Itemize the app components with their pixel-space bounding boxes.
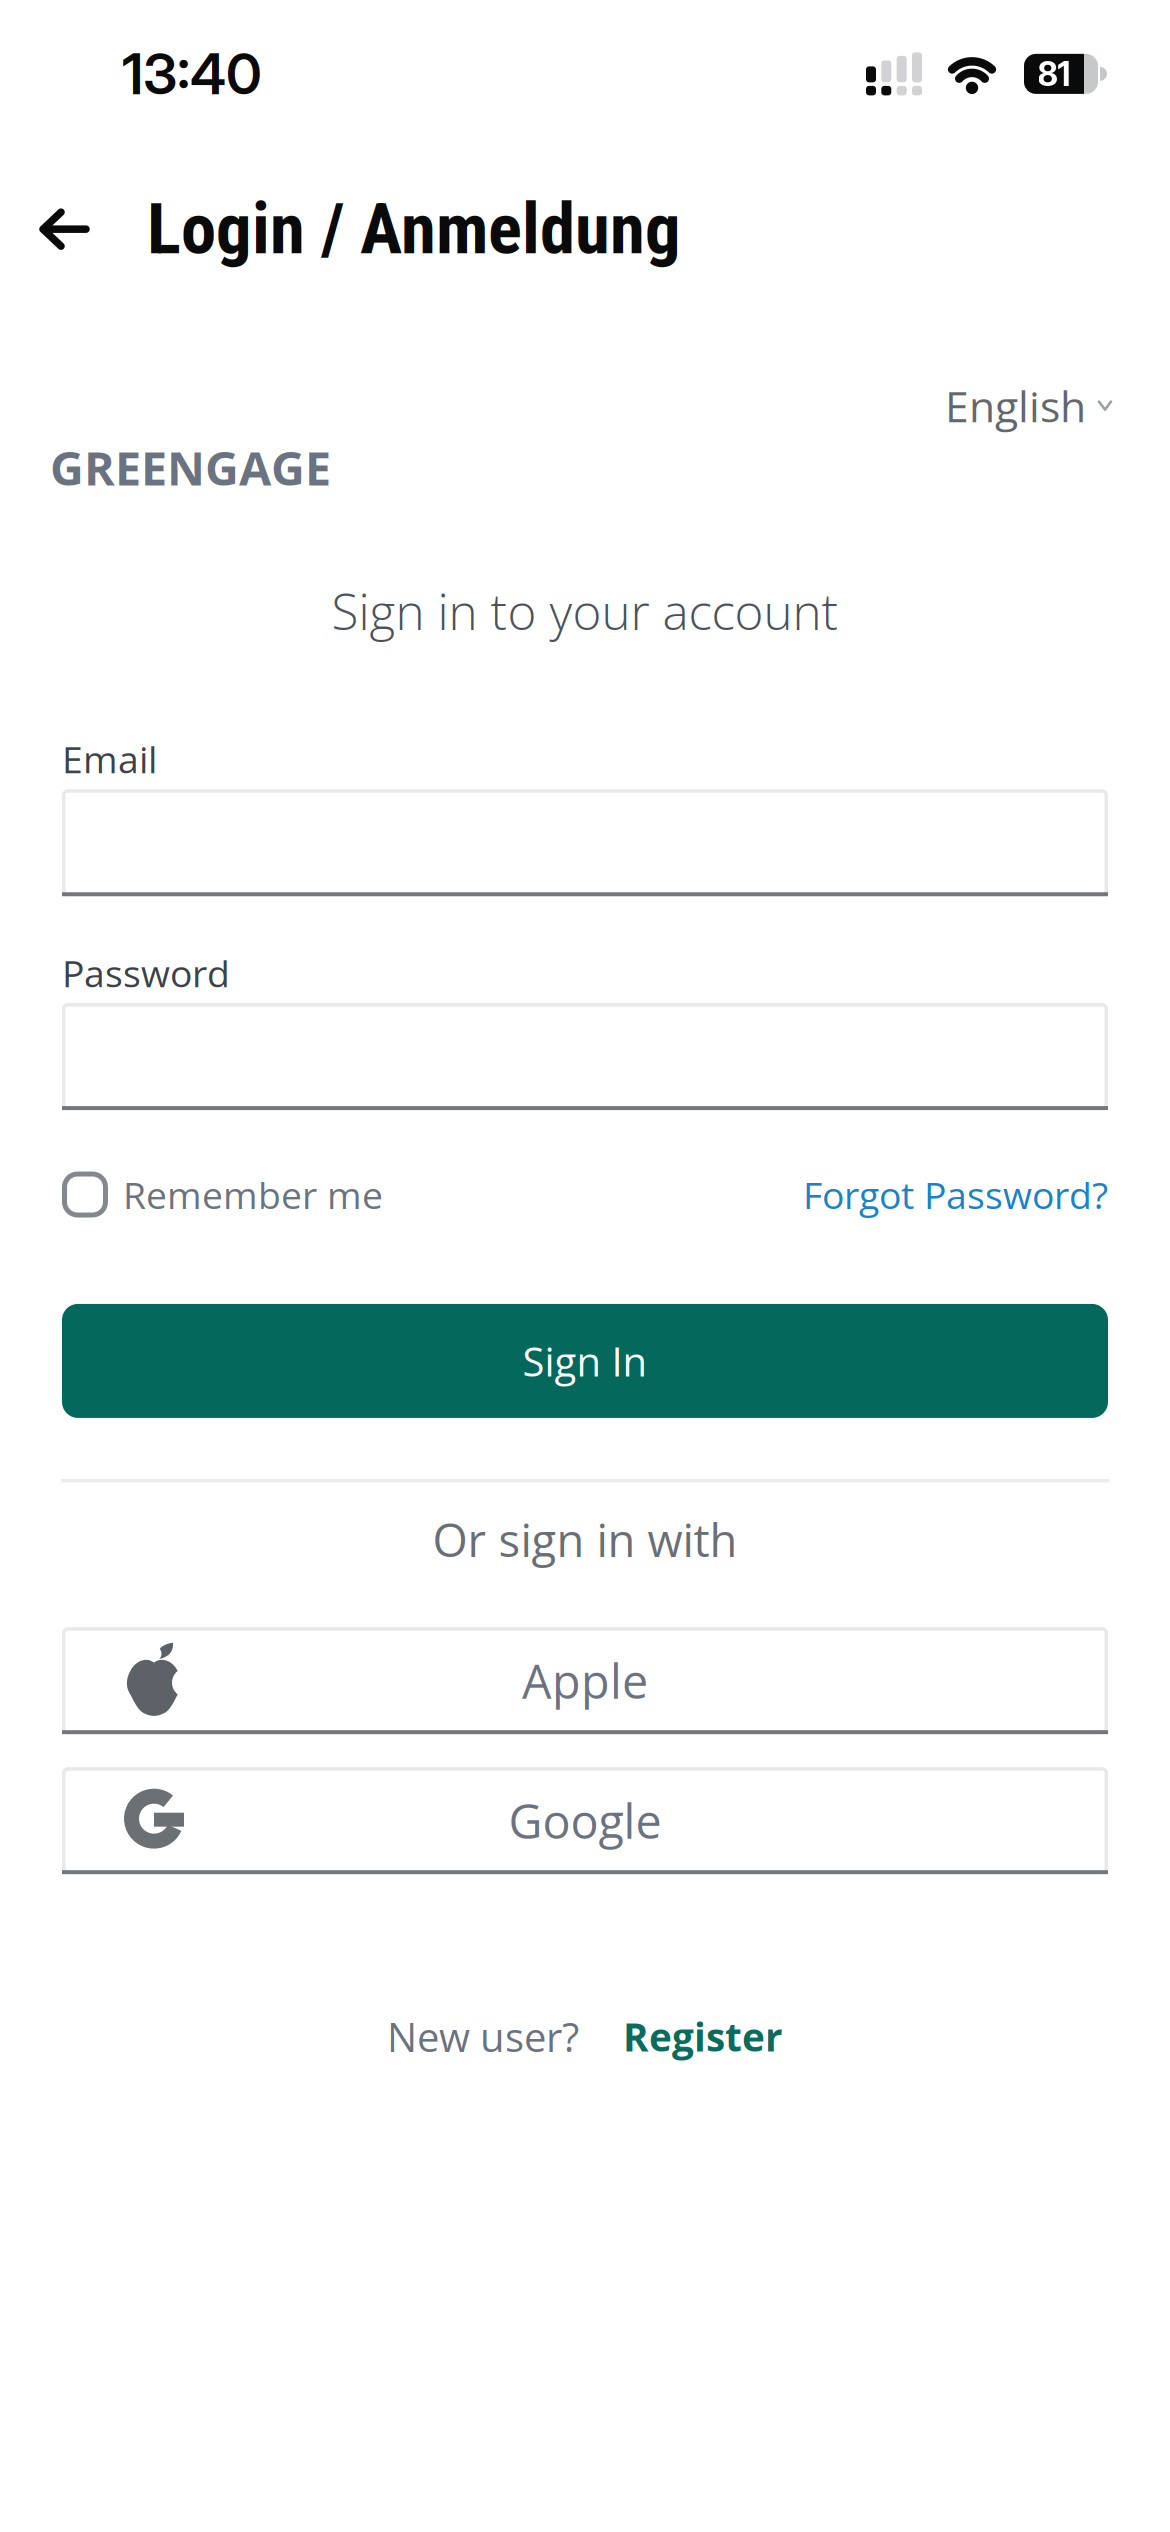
staticText: English [945,377,1086,435]
staticText: Apple [522,1649,648,1712]
staticText: Sign In [522,1334,647,1388]
staticText: New user? [387,2009,579,2064]
button[interactable]: Forgot Password? [803,1169,1108,1220]
button[interactable]: Language: English [945,377,1112,435]
staticText: 81 [1037,54,1070,94]
staticText: Email [62,733,157,784]
button[interactable]: Google [62,1767,1108,1874]
staticText: 13:40 [122,40,262,108]
button[interactable]: Remember me [62,1169,383,1220]
staticText: Remember me [123,1169,383,1220]
button[interactable]: Back [38,207,110,251]
staticText: Or sign in with [432,1508,737,1570]
staticText: Forgot Password? [803,1169,1108,1220]
staticText: GREENGAGE [50,436,331,499]
staticText: Google [508,1789,661,1852]
staticText: Login / Anmeldung [147,188,681,271]
button[interactable]: Apple [62,1627,1108,1734]
staticText: Sign in to your account [331,577,838,644]
staticText: Register [623,2010,783,2063]
button[interactable]: Sign In [62,1304,1108,1418]
button[interactable]: Register [623,2010,783,2063]
staticText: Password [62,947,230,998]
